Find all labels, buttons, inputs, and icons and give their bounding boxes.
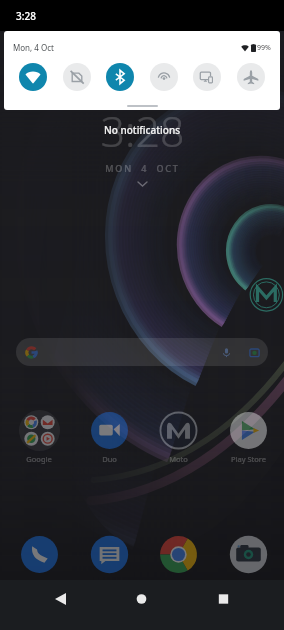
button[interactable]: Duo — [84, 410, 134, 464]
staticText: Play Store — [231, 454, 266, 464]
button[interactable]: Back — [40, 593, 81, 630]
button[interactable]: Play Store — [223, 410, 273, 464]
button[interactable]: Moto — [153, 410, 203, 464]
staticText: MON 4 OCT — [105, 162, 180, 174]
staticText: 99% — [257, 43, 271, 53]
button[interactable]: Recent apps — [203, 593, 244, 630]
button[interactable]: Airplane mode — [237, 63, 265, 91]
button[interactable]: Camera — [223, 534, 273, 575]
staticText: Mon, 4 Oct — [13, 42, 54, 53]
button[interactable]: Google — [14, 410, 64, 464]
button[interactable]: Hotspot — [150, 63, 178, 91]
staticText: Moto — [169, 454, 188, 464]
staticText: 3:28 — [16, 9, 36, 23]
button[interactable]: Home — [121, 593, 162, 630]
staticText: Duo — [102, 454, 117, 464]
button[interactable]: Phone — [14, 534, 64, 575]
button[interactable]: Bluetooth — [106, 63, 134, 91]
button[interactable]: Cast — [193, 63, 221, 91]
button[interactable]: Search — [16, 338, 268, 366]
staticText: 3:28 — [100, 101, 185, 160]
staticText: Google — [26, 454, 52, 464]
button[interactable]: Messages — [84, 534, 134, 575]
button[interactable]: Chrome — [153, 534, 203, 575]
staticText: No notifications — [0, 123, 284, 137]
button[interactable]: Mobile data — [63, 63, 91, 91]
button[interactable]: Wi-Fi — [19, 63, 47, 91]
